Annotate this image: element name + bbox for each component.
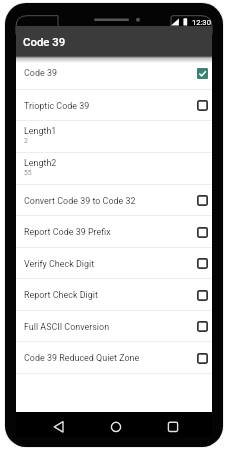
staticText: 55 [24, 169, 32, 177]
staticText: 12:30 [192, 18, 211, 27]
staticText: Length2 [24, 158, 57, 168]
staticText: Code 39 Reduced Quiet Zone [24, 353, 197, 363]
button[interactable]: Home [104, 416, 128, 437]
staticText: Verify Check Digit [24, 259, 197, 269]
button[interactable]: Full ASCII Conversion [16, 311, 212, 342]
button[interactable]: Code 39 [16, 56, 212, 90]
button[interactable]: Report Code 39 Prefix [16, 216, 212, 248]
button[interactable]: Code 39 Reduced Quiet Zone [16, 342, 212, 374]
button[interactable]: Trioptic Code 39 [16, 90, 212, 121]
button[interactable]: Report Check Digit [16, 279, 212, 311]
staticText: Trioptic Code 39 [24, 101, 197, 111]
button[interactable]: Back [47, 416, 71, 437]
button[interactable]: Length1 [16, 121, 212, 153]
button[interactable]: Convert Code 39 to Code 32 [16, 185, 212, 216]
button[interactable]: Recent apps [161, 416, 185, 437]
staticText: Full ASCII Conversion [24, 322, 197, 332]
staticText: Code 39 [23, 35, 66, 48]
button[interactable]: Length2 [16, 153, 212, 185]
button[interactable]: Verify Check Digit [16, 248, 212, 279]
staticText: Code 39 [24, 68, 197, 78]
staticText: 2 [24, 137, 28, 145]
staticText: Report Check Digit [24, 290, 197, 300]
staticText: Report Code 39 Prefix [24, 227, 197, 237]
staticText: Convert Code 39 to Code 32 [24, 196, 197, 206]
staticText: Length1 [24, 126, 57, 136]
